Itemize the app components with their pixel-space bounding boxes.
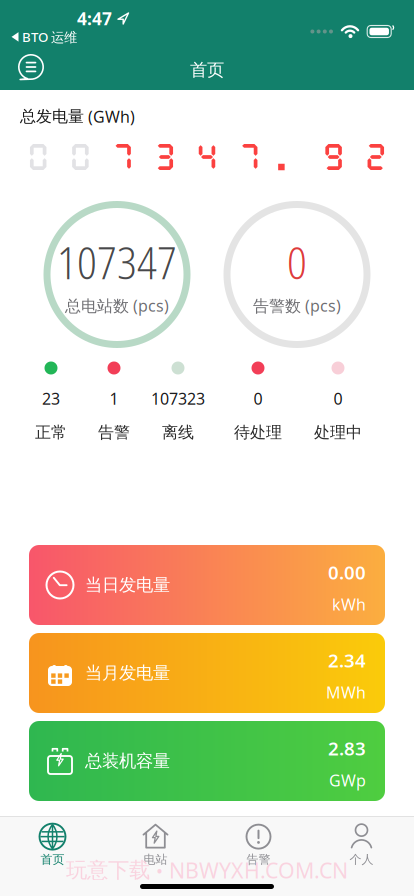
staticText: 0.00: [328, 560, 366, 585]
button[interactable]: 当日发电量: [29, 545, 385, 625]
staticText: 107347: [57, 233, 177, 292]
button[interactable]: 当月发电量: [29, 633, 385, 713]
staticText: 107323: [151, 388, 205, 409]
staticText: 0: [253, 388, 262, 409]
staticText: 当月发电量: [85, 662, 170, 684]
staticText: BTO 运维: [22, 28, 77, 46]
staticText: MWh: [326, 682, 366, 703]
staticText: NBWYXH.COM.CN: [169, 856, 348, 884]
staticText: 总发电量: [20, 107, 84, 126]
staticText: 总装机容量: [85, 750, 170, 772]
staticText: 总电站数 (pcs): [65, 295, 169, 316]
button[interactable]: 告警: [207, 819, 310, 871]
staticText: •: [156, 858, 163, 883]
staticText: 玩意下载: [66, 857, 150, 883]
button[interactable]: 总装机容量: [29, 721, 385, 801]
staticText: 告警数 (pcs): [253, 295, 341, 316]
staticText: 首页: [190, 59, 224, 81]
staticText: 2.34: [328, 648, 366, 673]
staticText: 23: [42, 388, 60, 409]
staticText: 0: [333, 388, 342, 409]
staticText: 电站: [143, 852, 167, 867]
staticText: kWh: [332, 594, 366, 615]
staticText: 处理中: [314, 423, 362, 442]
button[interactable]: 首页: [1, 819, 104, 871]
staticText: 2.83: [328, 736, 366, 761]
staticText: 首页: [40, 852, 64, 867]
staticText: 个人: [349, 852, 373, 867]
staticText: 4:47: [77, 7, 112, 30]
staticText: 待处理: [234, 423, 282, 442]
staticText: GWp: [329, 770, 366, 791]
staticText: 告警: [98, 423, 130, 442]
staticText: 正常: [35, 423, 67, 442]
staticText: 告警: [246, 852, 270, 867]
staticText: (GWh): [88, 106, 135, 127]
staticText: 0: [287, 233, 307, 292]
staticText: 当日发电量: [85, 574, 170, 596]
staticText: 离线: [162, 423, 194, 442]
button[interactable]: 个人: [310, 819, 413, 871]
staticText: 1: [109, 388, 118, 409]
button[interactable]: [16, 53, 46, 83]
button[interactable]: 电站: [104, 819, 207, 871]
